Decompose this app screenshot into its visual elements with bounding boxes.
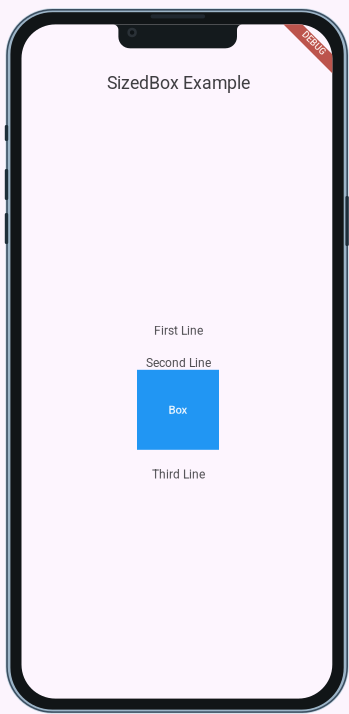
staticText: SizedBox Example xyxy=(107,73,250,93)
staticText: DEBUG xyxy=(299,37,328,48)
staticText: Box xyxy=(168,403,187,416)
staticText: Second Line xyxy=(146,356,211,370)
staticText: First Line xyxy=(154,324,203,338)
staticText: Third Line xyxy=(152,467,205,481)
